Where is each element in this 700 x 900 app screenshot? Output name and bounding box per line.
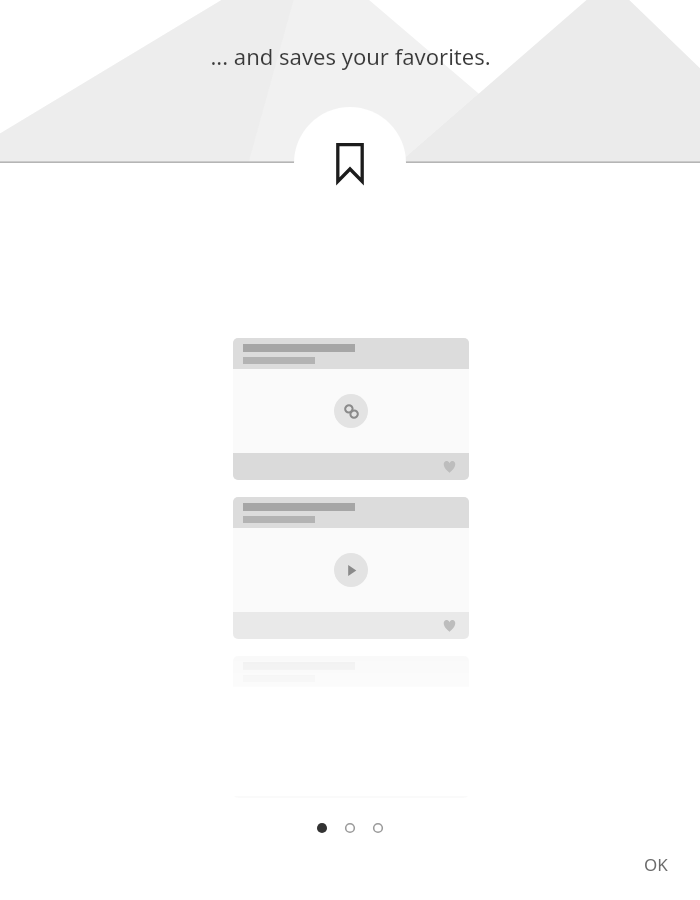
staticText: ... and saves your favorites. <box>210 41 491 71</box>
button[interactable] <box>371 821 385 835</box>
button[interactable]: Bookmark <box>294 107 406 219</box>
button[interactable] <box>233 338 469 480</box>
staticText: OK <box>644 853 668 876</box>
button[interactable] <box>233 497 469 639</box>
button[interactable] <box>315 821 329 835</box>
button[interactable] <box>343 821 357 835</box>
button[interactable]: OK <box>628 843 684 886</box>
